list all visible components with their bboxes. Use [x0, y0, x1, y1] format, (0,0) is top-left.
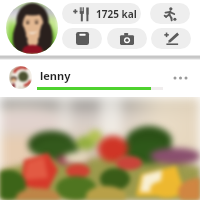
button[interactable]: Add activity [150, 3, 190, 24]
button[interactable]: Add note [151, 28, 191, 49]
button[interactable]: lenny profile photo [9, 66, 32, 89]
button[interactable]: Add weight [62, 28, 102, 49]
button[interactable]: 1725 kal [62, 3, 141, 24]
staticText: 1725 kal [96, 7, 137, 21]
button[interactable]: More options [172, 72, 189, 84]
staticText: lenny [40, 68, 71, 83]
button[interactable]: Take photo [107, 28, 147, 49]
button[interactable]: Profile photo [5, 1, 59, 55]
